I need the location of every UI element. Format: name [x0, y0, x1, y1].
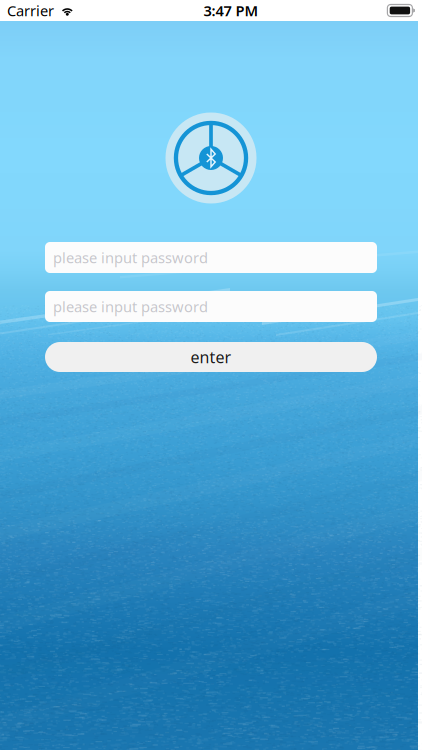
staticText: enter	[190, 346, 231, 368]
staticText: please input password	[53, 248, 208, 267]
staticText: please input password	[53, 297, 208, 316]
staticText: 3:47 PM	[203, 1, 258, 20]
button[interactable]: enter	[45, 342, 377, 372]
staticText: Carrier	[7, 1, 54, 20]
